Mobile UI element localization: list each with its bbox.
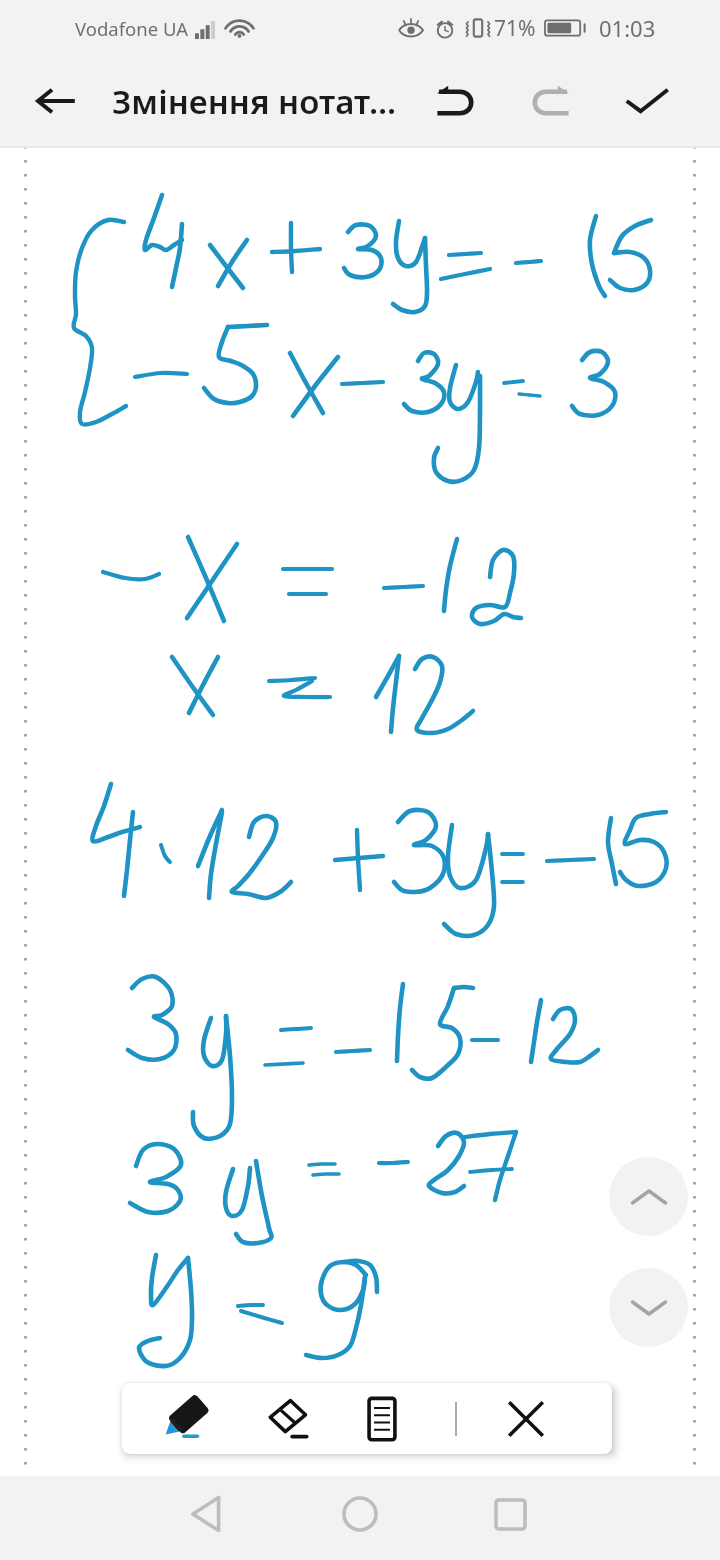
button[interactable]: Undo: [407, 56, 503, 146]
button[interactable]: Scroll down: [609, 1268, 688, 1347]
button[interactable]: Scroll up: [609, 1157, 688, 1236]
button[interactable]: Done: [599, 56, 695, 146]
button[interactable]: Redo: [503, 56, 599, 146]
button[interactable]: Recents: [464, 1472, 556, 1556]
staticText: 01:03: [599, 13, 656, 43]
button[interactable]: Back: [0, 56, 112, 146]
staticText: 71%: [494, 14, 536, 43]
staticText: Змінення нотат...: [112, 79, 397, 124]
button[interactable]: Eraser: [242, 1383, 332, 1454]
button[interactable]: Back: [160, 1472, 252, 1556]
staticText: Vodafone UA: [75, 16, 189, 41]
button[interactable]: Pen: [122, 1383, 244, 1454]
button[interactable]: Home: [314, 1472, 406, 1556]
button[interactable]: Note: [337, 1383, 427, 1454]
button[interactable]: Close: [459, 1383, 593, 1454]
